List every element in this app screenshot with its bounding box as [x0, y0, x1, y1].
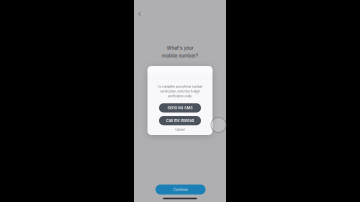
staticText: Call me instead	[124, 170, 236, 189]
staticText: verification, enter the 6-digit	[101, 56, 259, 70]
staticText: Send via SMS	[129, 119, 230, 138]
staticText: To complete your phone number	[90, 37, 269, 51]
staticText: verification code.	[131, 75, 228, 89]
button[interactable]: Send via SMS	[96, 110, 264, 147]
button[interactable]: Call me instead	[96, 161, 264, 198]
